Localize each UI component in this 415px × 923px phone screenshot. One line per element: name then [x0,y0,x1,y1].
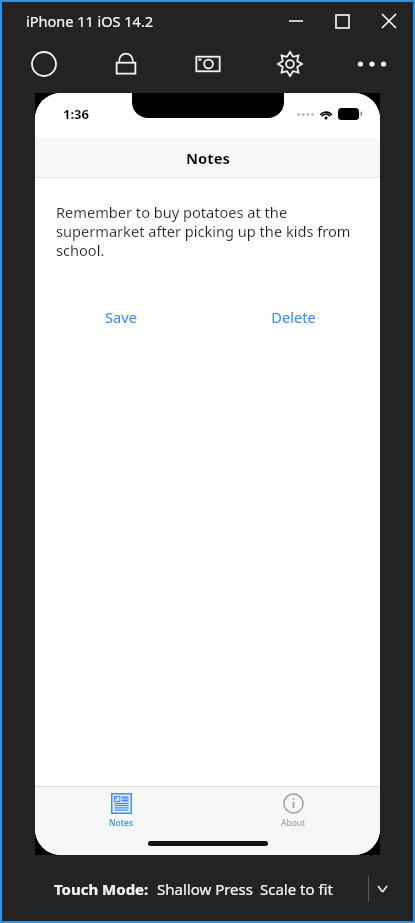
button[interactable]: Maximize [319,4,365,38]
staticText: Touch Mode: [54,879,149,899]
button[interactable]: Save [35,307,207,327]
button[interactable]: Home [2,40,85,88]
staticText: 1:36 [63,105,89,123]
button[interactable]: Delete [207,307,380,327]
button[interactable]: Screenshot [167,40,249,88]
staticText: Save [105,307,137,327]
button[interactable]: Close [365,4,413,38]
staticText: iPhone 11 iOS 14.2 [26,11,154,31]
button[interactable]: Scale to fit [260,879,333,899]
staticText: Notes [186,148,230,168]
button[interactable]: Settings [249,40,331,88]
staticText: Notes [109,817,134,829]
button[interactable]: Expand options [369,874,395,904]
button[interactable]: Notes [35,787,207,835]
staticText: Scale to fit [260,879,333,899]
staticText: Remember to buy potatoes at the supermar… [56,202,360,260]
staticText: About [281,817,306,829]
button[interactable]: Lock [85,40,167,88]
staticText: Delete [271,307,316,327]
button[interactable]: Shallow Press [157,879,253,899]
staticText: Shallow Press [157,879,253,899]
button[interactable]: More options [331,40,413,88]
button[interactable]: Minimize [273,4,319,38]
button[interactable]: About [207,787,380,835]
